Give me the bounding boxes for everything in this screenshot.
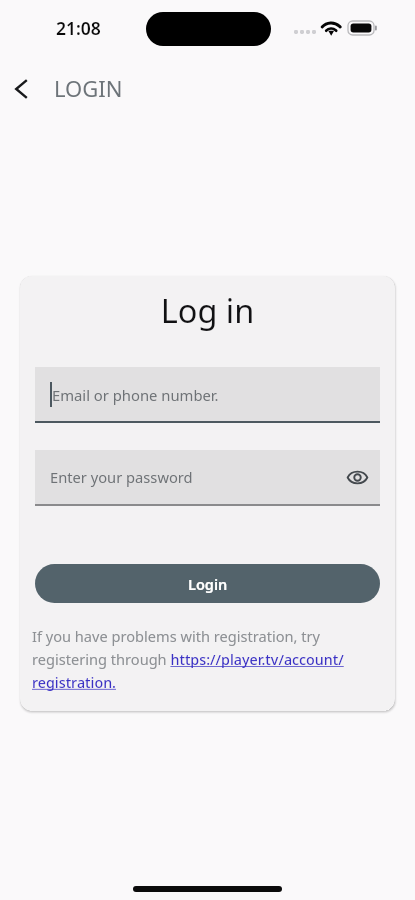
staticText: If you have problems with registration, …	[32, 626, 384, 692]
button[interactable]: Enter your password	[35, 450, 380, 504]
button[interactable]: Back	[4, 72, 38, 106]
button[interactable]: Login	[35, 564, 380, 603]
button[interactable]: Email or phone number.	[35, 367, 380, 421]
staticText: LOGIN	[54, 73, 123, 103]
staticText: 21:08	[56, 16, 101, 40]
staticText: Enter your password	[50, 467, 193, 487]
staticText: Email or phone number.	[52, 385, 219, 405]
button[interactable]: Show password	[343, 463, 371, 491]
staticText: Log in	[20, 288, 395, 332]
staticText: Login	[188, 574, 228, 594]
